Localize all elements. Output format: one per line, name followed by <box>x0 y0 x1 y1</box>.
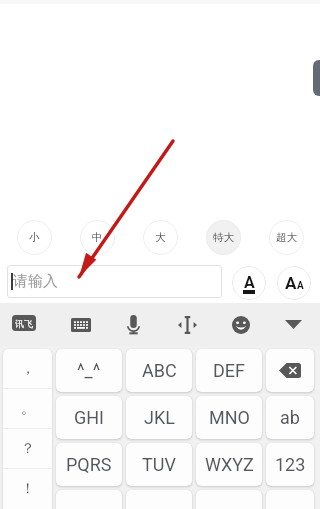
button[interactable]: MNO <box>196 396 262 439</box>
button[interactable]: 超大 <box>269 220 304 255</box>
button[interactable]: JKL <box>126 396 192 439</box>
button[interactable]: 中 <box>80 220 115 255</box>
staticText: A <box>285 273 297 293</box>
staticText: 小 <box>29 231 40 244</box>
staticText: 特大 <box>213 231 234 244</box>
button[interactable]: 123 <box>266 443 314 486</box>
staticText: ABC <box>142 360 177 381</box>
staticText: ？ <box>21 440 35 458</box>
staticText: A <box>297 280 304 292</box>
button[interactable]: 请输入 <box>7 265 222 298</box>
button[interactable]: Keyboard <box>60 303 102 346</box>
staticText: 。 <box>21 400 35 418</box>
staticText: 讯飞 <box>15 318 33 329</box>
button[interactable]: TUV <box>126 443 192 486</box>
button[interactable]: ABC <box>126 349 192 392</box>
button[interactable]: Text color <box>232 266 266 300</box>
button[interactable]: WXYZ <box>196 443 262 486</box>
button[interactable] <box>266 349 314 392</box>
button[interactable]: ^_^ <box>56 349 122 392</box>
staticText: TUV <box>142 454 176 475</box>
button[interactable]: iFlytek <box>12 315 36 331</box>
button[interactable]: Side tab <box>313 60 320 96</box>
staticText: 超大 <box>276 231 297 244</box>
staticText: MNO <box>209 407 250 428</box>
button[interactable]: 大 <box>143 220 178 255</box>
button[interactable]: Move cursor <box>166 303 208 346</box>
staticText: ！ <box>21 480 35 498</box>
button[interactable]: Hide keyboard <box>272 303 314 346</box>
button[interactable]: 小 <box>17 220 52 255</box>
button[interactable]: ！ <box>3 469 52 508</box>
button[interactable]: Voice input <box>112 303 154 346</box>
staticText: 中 <box>92 231 103 244</box>
button[interactable]: ab <box>266 396 314 439</box>
staticText: 请输入 <box>13 272 58 291</box>
staticText: ^_^ <box>77 360 101 381</box>
staticText: 123 <box>275 454 306 475</box>
staticText: DEF <box>213 360 245 381</box>
staticText: WXYZ <box>205 454 254 475</box>
button[interactable]: ， <box>3 349 52 388</box>
staticText: JKL <box>144 407 175 428</box>
button[interactable]: 。 <box>3 389 52 428</box>
button[interactable]: PQRS <box>56 443 122 486</box>
staticText: GHI <box>74 407 104 428</box>
button[interactable]: 特大 <box>206 220 241 255</box>
staticText: 大 <box>155 231 166 244</box>
staticText: ， <box>21 360 35 378</box>
staticText: ab <box>280 407 300 428</box>
button[interactable]: GHI <box>56 396 122 439</box>
button[interactable]: Emoji <box>220 303 262 346</box>
button[interactable]: ？ <box>3 429 52 468</box>
button[interactable]: Text size <box>277 266 311 300</box>
staticText: A <box>244 273 255 292</box>
staticText: PQRS <box>66 454 112 475</box>
button[interactable]: DEF <box>196 349 262 392</box>
